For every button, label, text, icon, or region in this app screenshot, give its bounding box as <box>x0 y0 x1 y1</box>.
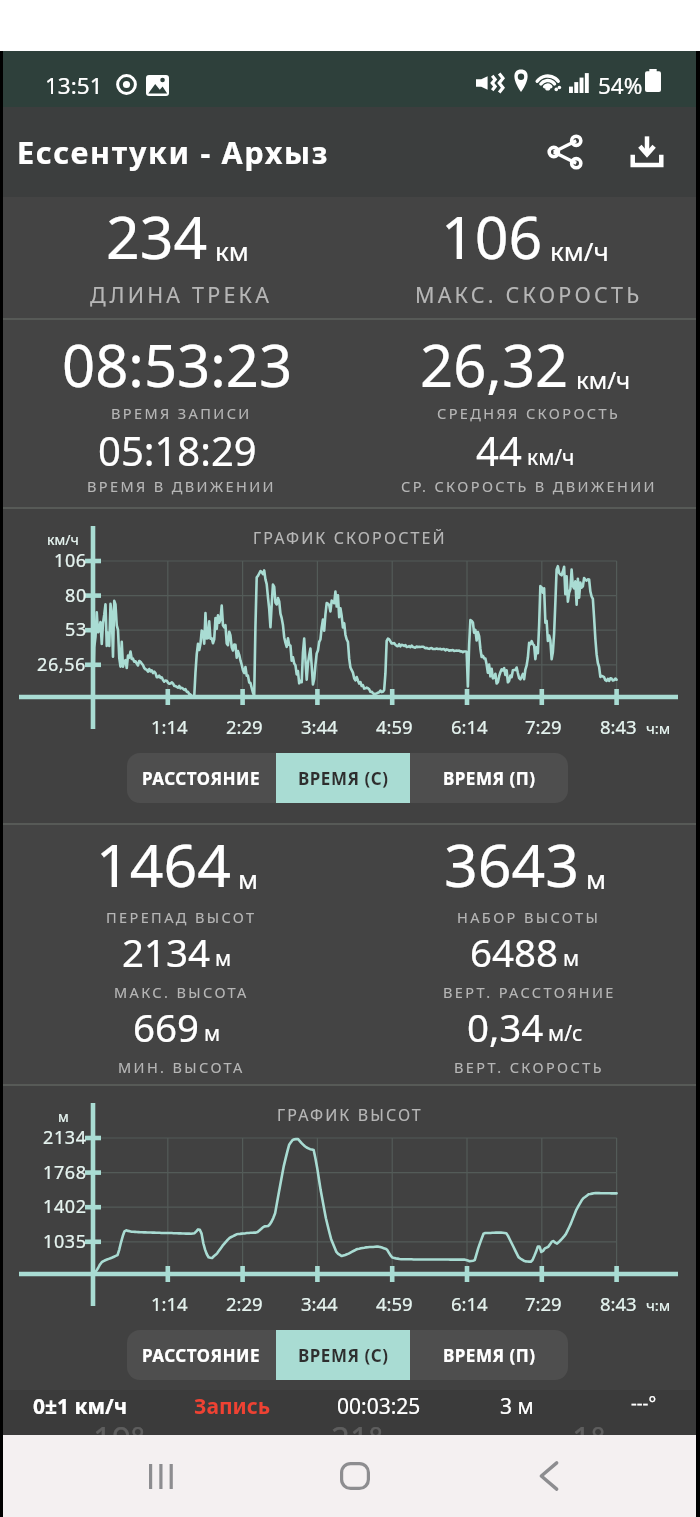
staticText: 0±1 км/ч <box>33 1392 128 1421</box>
staticText: ВРЕМЯ (П) <box>443 1344 536 1367</box>
button[interactable]: ВРЕМЯ (П) <box>410 1330 568 1380</box>
staticText: 80 <box>65 583 87 608</box>
staticText: км <box>215 233 249 268</box>
staticText: 106 <box>54 548 87 573</box>
staticText: 4:59 <box>376 1291 413 1316</box>
staticText: 1:14 <box>151 714 188 739</box>
staticText: 0,34 <box>467 1001 544 1053</box>
staticText: 1° <box>572 1416 605 1461</box>
staticText: ВРЕМЯ ЗАПИСИ <box>111 403 252 423</box>
staticText: м <box>586 861 606 896</box>
staticText: км/ч <box>47 530 79 549</box>
staticText: 19° <box>93 1416 145 1461</box>
staticText: ПЕРЕПАД ВЫСОТ <box>106 907 257 927</box>
button[interactable]: Home <box>313 1435 397 1517</box>
staticText: 8:43 <box>600 714 637 739</box>
staticText: км/ч <box>576 363 631 396</box>
staticText: 3 м <box>500 1392 534 1421</box>
staticText: 4:59 <box>376 714 413 739</box>
staticText: 05:18:29 <box>98 423 257 477</box>
staticText: РАССТОЯНИЕ <box>142 1344 261 1367</box>
staticText: ВЕРТ. РАССТОЯНИЕ <box>443 982 616 1002</box>
staticText: Ессентуки - Архыз <box>17 131 330 173</box>
staticText: 669 <box>133 1001 200 1053</box>
staticText: м <box>204 1019 221 1048</box>
staticText: м/с <box>548 1019 583 1048</box>
staticText: ч:м <box>646 1295 671 1315</box>
staticText: ВРЕМЯ (С) <box>298 1344 389 1367</box>
staticText: 3:44 <box>301 714 338 739</box>
button[interactable]: Download <box>612 117 682 187</box>
button[interactable]: РАССТОЯНИЕ <box>127 1330 276 1380</box>
staticText: ГРАФИК ВЫСОТ <box>277 1104 423 1126</box>
button[interactable]: РАССТОЯНИЕ <box>127 753 276 803</box>
staticText: км/ч <box>550 233 609 268</box>
staticText: м <box>563 944 580 973</box>
staticText: 6:14 <box>451 714 488 739</box>
staticText: 2134 <box>43 1125 87 1150</box>
staticText: МИН. ВЫСОТА <box>118 1057 245 1077</box>
staticText: 3643 <box>444 824 579 904</box>
staticText: НАБОР ВЫСОТЫ <box>457 907 601 927</box>
staticText: м <box>215 944 232 973</box>
staticText: ---° <box>631 1391 657 1416</box>
staticText: МАКС. ВЫСОТА <box>114 982 249 1002</box>
staticText: 13:51 <box>45 70 103 101</box>
staticText: 8:43 <box>600 1291 637 1316</box>
staticText: 6488 <box>470 926 559 978</box>
button[interactable]: ВРЕМЯ (С) <box>276 753 410 803</box>
staticText: м <box>58 1107 69 1126</box>
staticText: 26,32 <box>420 325 569 404</box>
staticText: 234 <box>106 196 208 276</box>
staticText: 26,56 <box>37 652 87 677</box>
staticText: 106 <box>441 196 543 276</box>
button[interactable]: Back <box>507 1435 591 1517</box>
staticText: ВРЕМЯ В ДВИЖЕНИИ <box>87 476 276 496</box>
staticText: ГРАФИК СКОРОСТЕЙ <box>253 527 447 549</box>
staticText: ч:м <box>646 718 671 738</box>
staticText: ВЕРТ. СКОРОСТЬ <box>454 1057 604 1077</box>
staticText: 44 <box>476 423 522 477</box>
staticText: 2:29 <box>226 1291 263 1316</box>
staticText: 53 <box>65 617 87 642</box>
staticText: 3:44 <box>301 1291 338 1316</box>
staticText: СР. СКОРОСТЬ В ДВИЖЕНИИ <box>401 476 657 496</box>
staticText: 2:29 <box>226 714 263 739</box>
staticText: ДЛИНА ТРЕКА <box>90 280 273 309</box>
staticText: СРЕДНЯЯ СКОРОСТЬ <box>437 403 621 423</box>
staticText: РАССТОЯНИЕ <box>142 767 261 790</box>
button[interactable]: ВРЕМЯ (П) <box>410 753 568 803</box>
staticText: 00:03:25 <box>337 1392 421 1421</box>
staticText: 1768 <box>43 1160 87 1185</box>
button[interactable]: Share <box>530 117 600 187</box>
staticText: 08:53:23 <box>62 325 293 404</box>
staticText: 6:14 <box>451 1291 488 1316</box>
staticText: 54% <box>598 70 643 101</box>
staticText: МАКС. СКОРОСТЬ <box>415 280 643 309</box>
staticText: ВРЕМЯ (П) <box>443 767 536 790</box>
button[interactable]: ВРЕМЯ (С) <box>276 1330 410 1380</box>
staticText: 1035 <box>43 1229 87 1254</box>
staticText: км/ч <box>527 443 575 472</box>
staticText: Запись <box>194 1392 271 1421</box>
staticText: м <box>238 861 258 896</box>
button[interactable]: Recent apps <box>120 1435 204 1517</box>
staticText: 7:29 <box>525 714 562 739</box>
staticText: 1464 <box>96 824 231 904</box>
staticText: 1402 <box>43 1194 87 1219</box>
staticText: ВРЕМЯ (С) <box>298 767 389 790</box>
staticText: 1:14 <box>151 1291 188 1316</box>
staticText: 7:29 <box>525 1291 562 1316</box>
staticText: 21° <box>331 1416 383 1461</box>
staticText: 2134 <box>122 926 211 978</box>
